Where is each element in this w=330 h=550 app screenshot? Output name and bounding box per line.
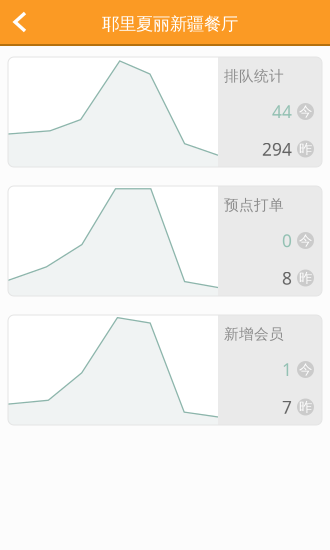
button[interactable]: 预点打单 (8, 186, 322, 296)
staticText: 昨 (299, 270, 312, 286)
staticText: 44 (272, 100, 292, 123)
button[interactable]: 排队统计 (8, 57, 322, 167)
staticText: 昨 (299, 141, 312, 157)
staticText: 预点打单 (224, 196, 284, 214)
staticText: 1 (282, 358, 292, 381)
staticText: 今 (299, 103, 312, 120)
staticText: 今 (299, 232, 312, 249)
staticText: 今 (299, 361, 312, 378)
staticText: 排队统计 (224, 67, 284, 85)
staticText: 新增会员 (224, 325, 284, 343)
button[interactable]: Back (0, 0, 37, 44)
button[interactable]: 新增会员 (8, 315, 322, 425)
staticText: 294 (262, 137, 292, 160)
staticText: 昨 (299, 399, 312, 415)
staticText: 0 (282, 229, 292, 252)
staticText: 7 (282, 395, 292, 418)
staticText: 耶里夏丽新疆餐厅 (102, 13, 238, 35)
staticText: 8 (282, 266, 292, 289)
